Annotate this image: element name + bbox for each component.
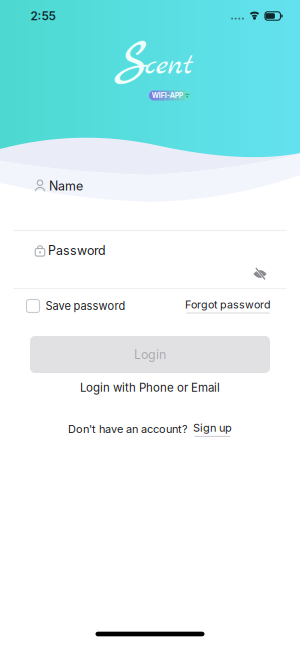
staticText: Forgot password	[185, 298, 271, 311]
button[interactable]: Show password	[249, 264, 271, 284]
staticText: Password	[48, 243, 106, 258]
staticText: Save password	[45, 299, 125, 313]
staticText: cent	[145, 46, 193, 85]
staticText: Sign up	[193, 421, 232, 434]
staticText: Login	[134, 347, 166, 362]
staticText: S	[115, 29, 148, 95]
button[interactable]: Login	[30, 336, 270, 373]
staticText: 2:55	[30, 9, 55, 23]
staticText: WIFI-APP	[152, 91, 183, 100]
button[interactable]: Sign up	[193, 421, 232, 437]
staticText: Don't have an account?	[68, 422, 188, 436]
button[interactable]: Save password	[26, 299, 125, 313]
button[interactable]: Forgot password	[186, 297, 270, 314]
staticText: Name	[49, 178, 83, 193]
staticText: Login with Phone or Email	[80, 381, 220, 394]
button[interactable]: Login with Phone or Email	[80, 381, 220, 394]
